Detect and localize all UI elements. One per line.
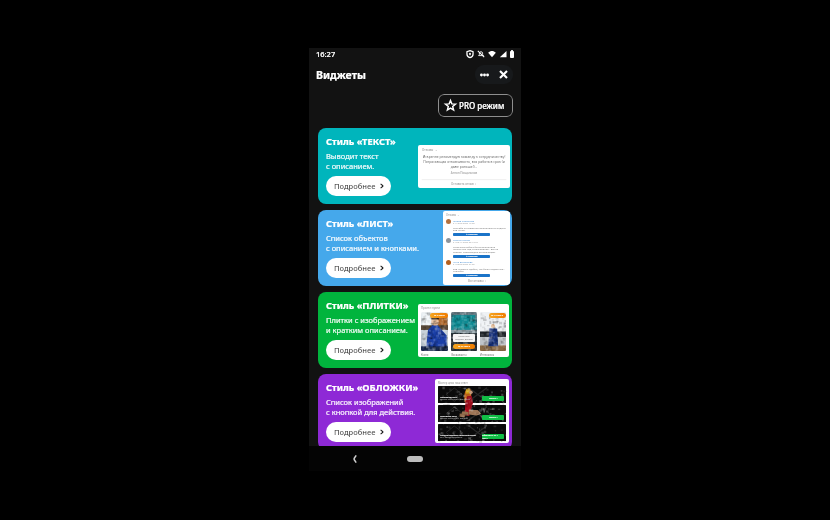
staticText: 5 • 08.11.2024 по 15:10 (453, 241, 478, 244)
staticText: Предоставляем персональные (440, 433, 476, 436)
staticText: Кухонные модули: дизайн (455, 335, 473, 341)
staticText: ← Ответить (466, 255, 478, 258)
staticText: от 9 000 ₽ (434, 314, 445, 317)
staticText: Фасадкарты (451, 353, 467, 356)
staticText: Плитки с изображением (326, 315, 415, 325)
staticText: с кнопкой для действия. (326, 407, 416, 417)
staticText: Наружная сеть (440, 395, 458, 398)
button[interactable]: More options (475, 65, 494, 84)
staticText: Анна Васильева (453, 260, 473, 263)
staticText: Оставить отзыв › (451, 182, 477, 186)
staticText: Мария Смирнова (453, 219, 475, 222)
staticText: с описанием и кнопками. (326, 243, 419, 253)
staticText: Список изображений (326, 397, 404, 407)
staticText: Стиль «ТЕКСТ» (326, 135, 396, 148)
staticText: ← Ответить (466, 274, 478, 277)
button[interactable]: Подробнее (326, 422, 391, 442)
staticText: Всё готово и удобно, так было задано всё… (453, 267, 507, 273)
staticText: Отличная работа была выполнена полностью… (453, 245, 507, 254)
staticText: Кухни (421, 353, 429, 356)
staticText: Доступ к 50 и 400 1 000 000 (440, 417, 468, 420)
staticText: Подробнее (334, 345, 376, 355)
staticText: Узнать › (489, 416, 498, 419)
staticText: Сергей Попов (453, 238, 470, 241)
button[interactable]: Отзывы ⌄ (318, 210, 512, 286)
staticText: и кратким описанием. (326, 325, 408, 335)
staticText: Антон Пищальков (422, 171, 506, 175)
staticText: Мастер цеха: наш ответ (438, 381, 468, 385)
staticText: Стиль «ОБЛОЖКИ» (326, 381, 419, 394)
staticText: Узнать › (489, 397, 498, 400)
staticText: ← Ответить (466, 233, 478, 236)
staticText: Торговые сети (440, 414, 457, 417)
button[interactable]: Мастер цеха: наш ответ (318, 374, 512, 450)
button[interactable]: PRO режим (438, 94, 513, 117)
staticText: Подробнее (334, 263, 376, 273)
staticText: на 1 месяц бесплатно (440, 436, 463, 439)
staticText: от 21 000 ₽ (458, 345, 471, 348)
staticText: Отзывы ⌄ (422, 148, 438, 152)
staticText: Стиль «ЛИСТ» (326, 217, 394, 230)
staticText: Доступ к 50 и 400 1 000 000 м² (440, 398, 471, 401)
staticText: Список объектов (326, 233, 388, 243)
button[interactable]: Подробнее (326, 176, 391, 196)
button[interactable]: Подробнее (326, 340, 391, 360)
staticText: Подробнее (334, 181, 376, 191)
staticText: Интерьеры (480, 353, 495, 356)
staticText: PRO режим (459, 100, 505, 111)
staticText: Оформить за 1 мин › (482, 434, 504, 439)
staticText: Стиль «ПЛИТКИ» (326, 299, 409, 312)
staticText: с описанием. (326, 161, 375, 171)
button[interactable]: Home (407, 456, 423, 462)
staticText: Все отзывы › (468, 279, 486, 283)
button[interactable]: Проект: кухни (318, 292, 512, 368)
staticText: Искренне рекомендую команду к сотрудниче… (422, 154, 506, 169)
staticText: Виджеты (316, 68, 366, 82)
staticText: Подробнее (334, 427, 376, 437)
staticText: от 14 000 ₽ (491, 314, 504, 317)
staticText: 5 • 20.03.2024 21:35 (453, 263, 475, 266)
button[interactable]: Back (347, 451, 363, 467)
staticText: 16:27 (316, 49, 336, 59)
staticText: Спасибо за грамотно выполненную задачу! … (453, 226, 507, 232)
staticText: Выводит текст (326, 151, 379, 161)
staticText: Проект: кухни (421, 306, 441, 310)
staticText: 5 • 10.02.2024 17:28 (453, 222, 475, 225)
button[interactable]: Отзывы ⌄ (318, 128, 512, 204)
staticText: Отзывы ⌄ (446, 213, 460, 217)
button[interactable]: Close (494, 65, 513, 84)
button[interactable]: Подробнее (326, 258, 391, 278)
